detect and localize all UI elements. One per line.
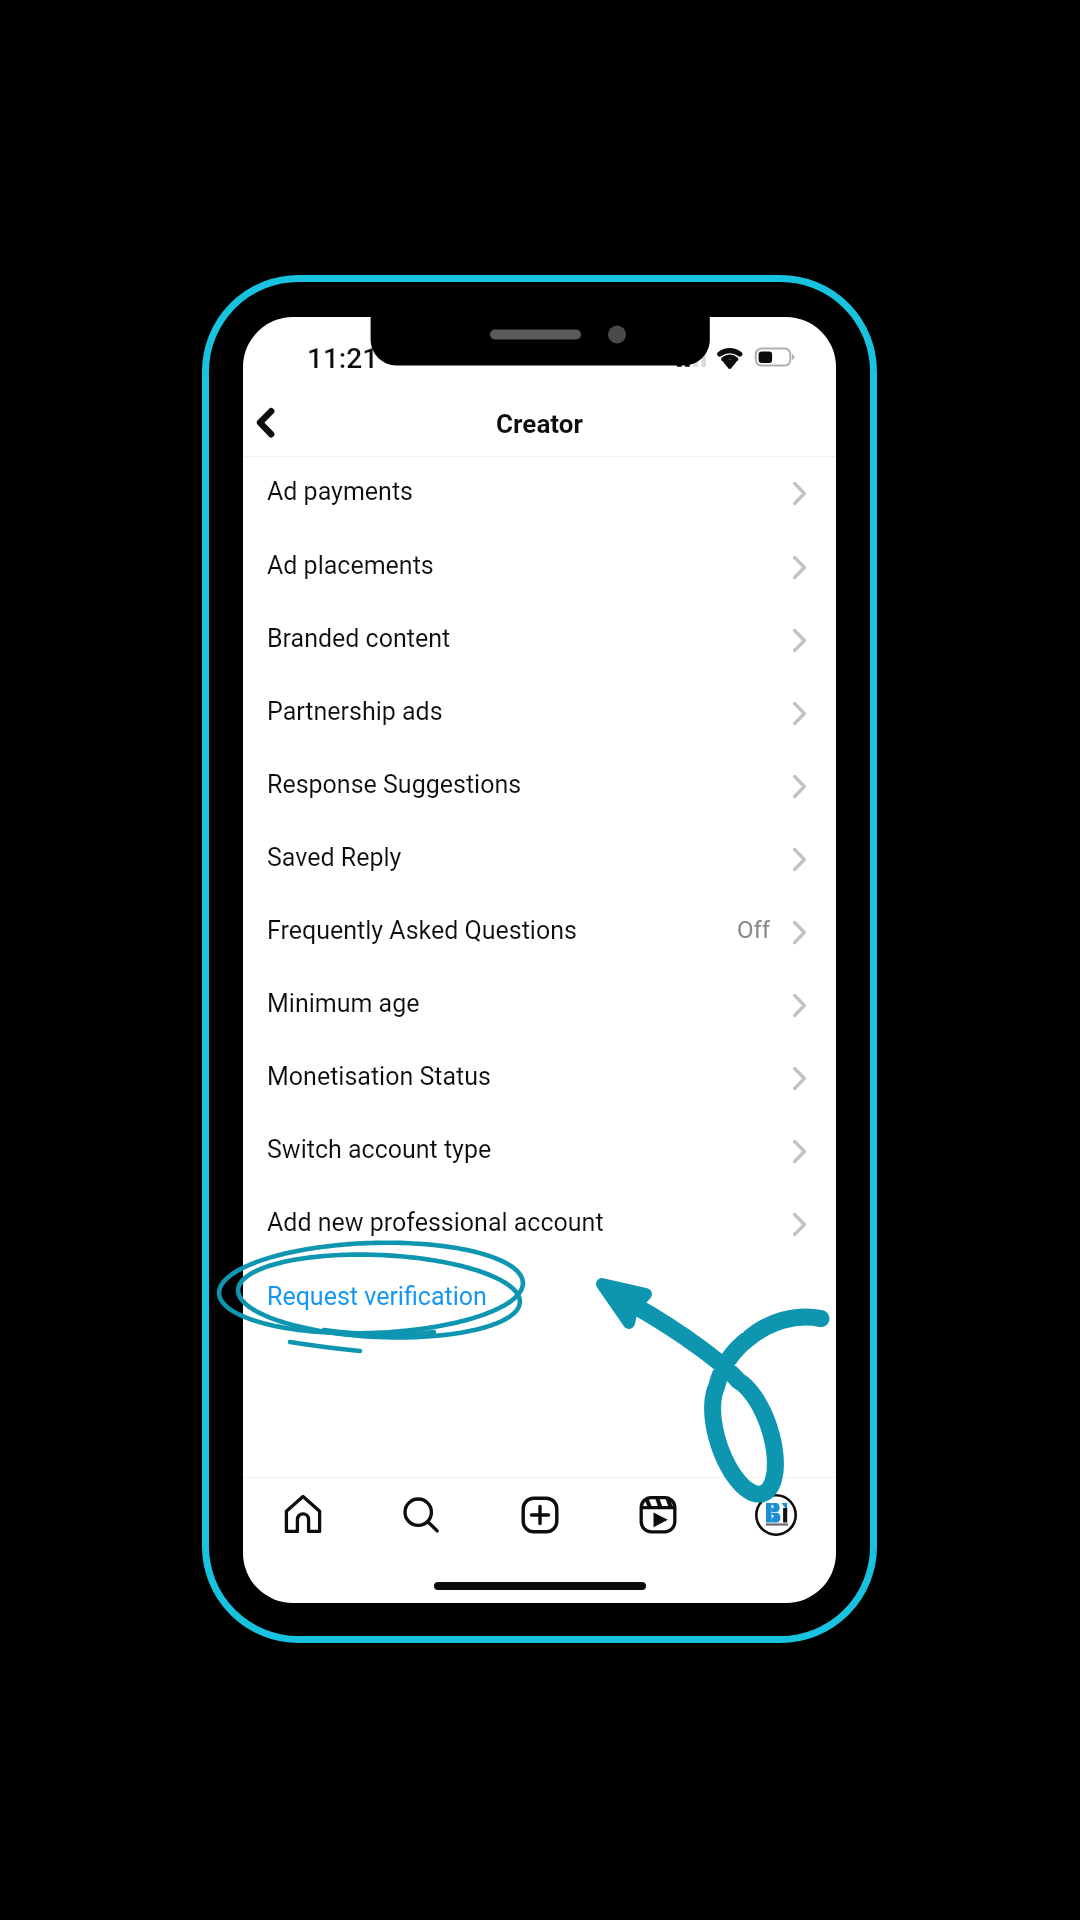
button[interactable]: Ad payments xyxy=(243,457,836,530)
button[interactable]: Partnership ads xyxy=(243,677,836,750)
staticText: Minimum age xyxy=(267,989,420,1018)
staticText: Monetisation Status xyxy=(267,1062,491,1091)
button[interactable]: Create xyxy=(510,1485,570,1545)
button[interactable]: Search xyxy=(390,1485,450,1545)
staticText: Ad payments xyxy=(267,477,413,506)
staticText: Request verification xyxy=(267,1282,487,1311)
button[interactable]: Profile xyxy=(746,1485,806,1545)
button[interactable]: Branded content xyxy=(243,604,836,677)
staticText: Partnership ads xyxy=(267,697,443,726)
button[interactable]: Monetisation Status xyxy=(243,1042,836,1115)
button[interactable]: Request verification xyxy=(243,1262,836,1335)
staticText: Saved Reply xyxy=(267,843,402,872)
button[interactable]: Home xyxy=(273,1485,333,1545)
button[interactable]: Saved Reply xyxy=(243,823,836,896)
staticText: 11:21 xyxy=(307,342,379,375)
button[interactable]: Ad placements xyxy=(243,531,836,604)
button[interactable]: Frequently Asked Questions xyxy=(243,896,836,969)
staticText: Response Suggestions xyxy=(267,770,522,799)
button[interactable]: Response Suggestions xyxy=(243,750,836,823)
button[interactable]: Minimum age xyxy=(243,969,836,1042)
button[interactable]: Reels xyxy=(628,1485,688,1545)
button[interactable]: Add new professional account xyxy=(243,1188,836,1261)
button[interactable]: Back xyxy=(245,381,307,443)
button[interactable]: Switch account type xyxy=(243,1115,836,1188)
staticText: Ad placements xyxy=(267,551,434,580)
staticText: Switch account type xyxy=(267,1135,492,1164)
staticText: Creator xyxy=(243,409,836,439)
staticText: Frequently Asked Questions xyxy=(267,916,577,945)
staticText: Branded content xyxy=(267,624,451,653)
staticText: Add new professional account xyxy=(267,1208,604,1237)
staticText: Off xyxy=(737,916,771,944)
